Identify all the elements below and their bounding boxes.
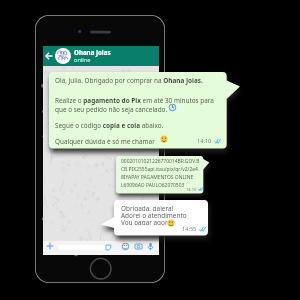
staticText: Olá, Julia. Obrigado por comprar na Ohan… (55, 76, 203, 85)
staticText: L60096AO PAULO62070503 (121, 182, 185, 189)
staticText: que o seu pedido não seja cancelado. (55, 105, 168, 114)
staticText: 8IYAPAY PAGAMENTOS ONLINE (121, 174, 194, 181)
button[interactable]: Back (44, 51, 53, 61)
staticText: Realize o pagamento do Pix em até 30 min… (55, 96, 214, 105)
button[interactable] (43, 241, 159, 255)
staticText: 14:55 (182, 225, 197, 233)
button[interactable]: Microphone (146, 242, 155, 251)
staticText: CB.PIX2555api.itau/pix/qr/v2/2e4 (121, 166, 198, 173)
staticText: 14:10 (186, 187, 197, 192)
staticText: Ohana Joias (74, 48, 111, 56)
staticText: 00020101021226770014BR.GOV.B (121, 158, 200, 165)
staticText: Vou pagar agora (121, 218, 171, 225)
staticText: online (74, 56, 91, 64)
button[interactable]: Camera (134, 242, 143, 251)
button[interactable]: 00020101021226770014BR.GOV.B (116, 156, 213, 200)
button[interactable]: Back (43, 46, 159, 66)
button[interactable]: Obrigada, galera! (101, 200, 213, 244)
button[interactable]: Emoji (121, 242, 130, 251)
staticText: Adorei o atendimento (121, 211, 187, 218)
staticText: 14:10 (197, 137, 212, 145)
button[interactable] (57, 244, 113, 251)
button[interactable]: Olá, Julia. Obrigado por comprar na Ohan… (49, 72, 244, 158)
staticText: Qualquer dúvida é só me chamar (55, 137, 155, 146)
staticText: Segue o código copia e cola abaixo. (55, 121, 164, 130)
button[interactable]: Attach (46, 242, 54, 250)
staticText: Obrigada, galera! (121, 204, 174, 211)
